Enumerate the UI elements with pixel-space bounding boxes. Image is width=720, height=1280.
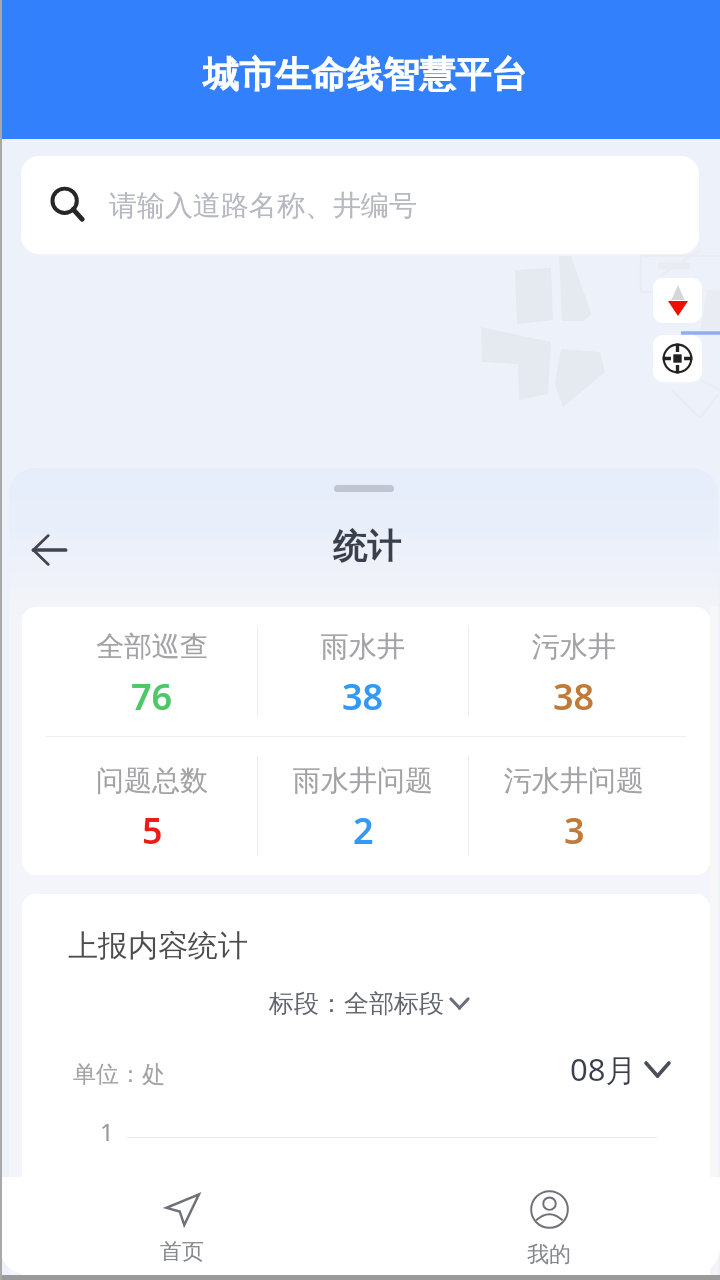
button[interactable]: 首页: [0, 1177, 360, 1274]
staticText: 首页: [160, 1238, 204, 1266]
staticText: 5: [142, 806, 163, 855]
staticText: 3: [564, 806, 585, 855]
staticText: 问题总数: [96, 763, 208, 798]
staticText: 污水井: [532, 629, 616, 664]
button[interactable]: My location: [653, 335, 702, 382]
staticText: 标段：全部标段: [269, 988, 444, 1019]
staticText: 上报内容统计: [68, 927, 248, 965]
button[interactable]: 我的: [360, 1177, 720, 1274]
button[interactable]: Compass: [653, 278, 702, 323]
staticText: 污水井问题: [504, 763, 644, 798]
staticText: 我的: [527, 1241, 571, 1269]
staticText: 38: [553, 672, 595, 721]
staticText: 请输入道路名称、井编号: [109, 188, 417, 223]
staticText: 2: [353, 806, 374, 855]
staticText: 统计: [333, 525, 401, 568]
staticText: 雨水井: [321, 629, 405, 664]
staticText: 雨水井问题: [293, 763, 433, 798]
button[interactable]: Back: [18, 514, 80, 576]
button[interactable]: 请输入道路名称、井编号: [21, 156, 699, 254]
staticText: 全部巡查: [96, 629, 208, 664]
staticText: 单位：处: [73, 1060, 165, 1089]
staticText: 城市生命线智慧平台: [203, 52, 527, 97]
staticText: 38: [342, 672, 384, 721]
staticText: 08月: [570, 1048, 637, 1090]
staticText: 1: [100, 1115, 114, 1148]
staticText: 76: [131, 672, 173, 721]
